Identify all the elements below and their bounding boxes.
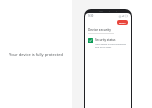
staticText: Security status xyxy=(95,38,116,42)
staticText: SCAN xyxy=(119,21,126,24)
staticText: Your device is fully protected xyxy=(9,52,63,57)
button[interactable]: SCAN xyxy=(117,20,128,25)
staticText: 9:30 xyxy=(88,14,94,18)
staticText: Device security xyxy=(88,28,111,32)
button[interactable]: Protected xyxy=(85,37,131,50)
other: Protected xyxy=(88,38,93,43)
staticText: Your device is fully protected and up to… xyxy=(95,43,128,49)
